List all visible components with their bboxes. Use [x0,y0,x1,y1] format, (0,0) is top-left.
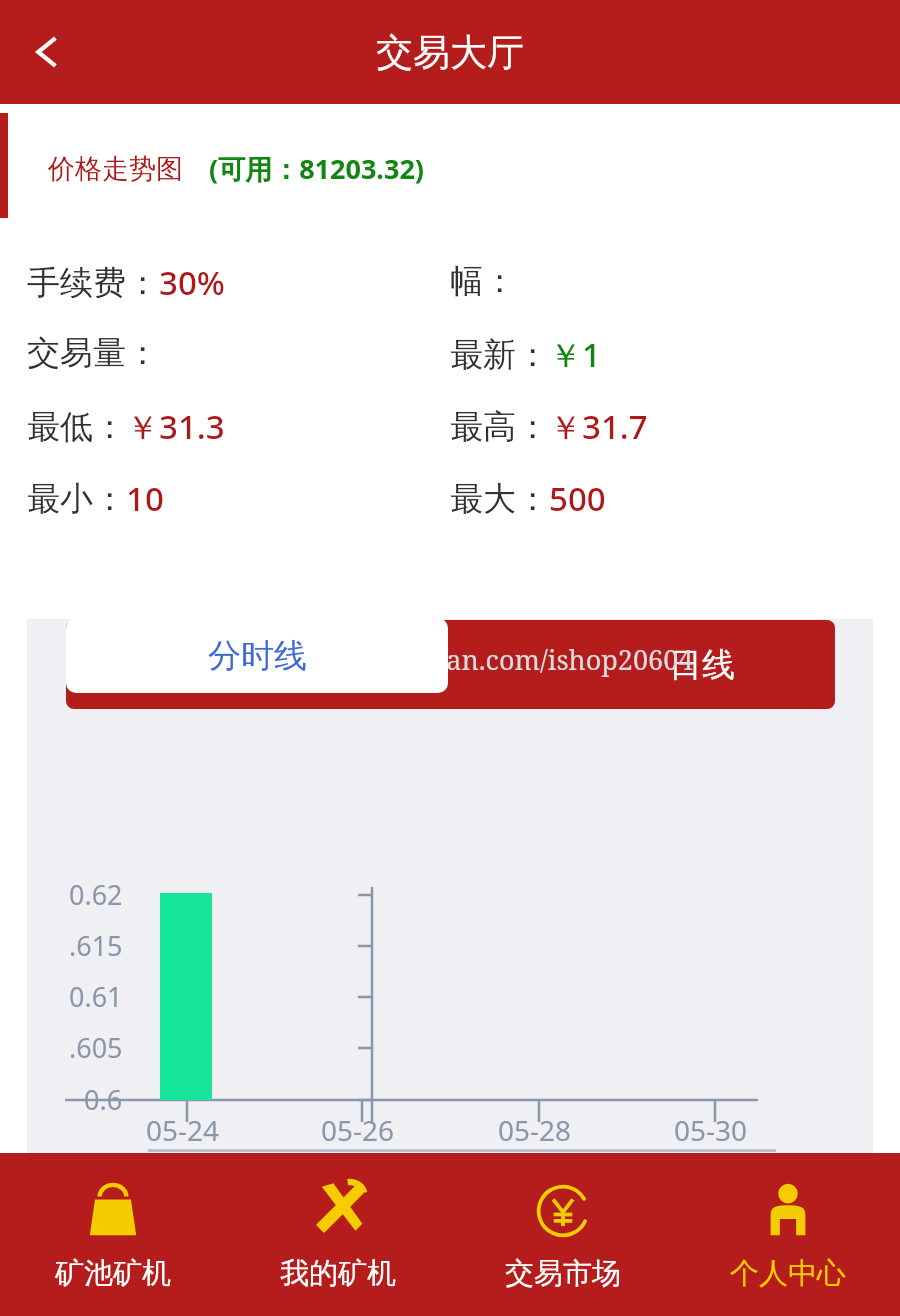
staticText: 05-28 [498,1111,572,1149]
staticText: ￥31.3 [126,404,225,449]
staticText: 最小： [27,478,126,520]
button[interactable]: 交易市场 [450,1153,675,1316]
staticText: https://www。huzhan.com/ishop20604 [196,641,694,678]
staticText: ￥31.7 [549,404,648,449]
staticText: 05-30 [674,1111,748,1149]
staticText: 个人中心 [730,1255,846,1292]
button[interactable]: 分时线 [66,618,448,693]
button[interactable]: 矿池矿机 [0,1153,225,1316]
staticText: 0.62 [69,876,123,913]
staticText: 我的矿机 [280,1255,396,1292]
staticText: 价格走势图 [48,152,183,186]
staticText: 最新： [450,334,549,376]
staticText: 0.61 [69,978,123,1015]
staticText: 交易市场 [505,1255,621,1292]
staticText: 最低： [27,406,126,448]
staticText: 幅： [450,260,516,302]
staticText: .615 [69,927,123,964]
button[interactable]: 我的矿机 [225,1153,450,1316]
staticText: 05-24 [146,1111,220,1149]
staticText: 最大： [450,478,549,520]
button[interactable]: 个人中心 [675,1153,900,1316]
staticText: 05-26 [321,1111,395,1149]
staticText: 10 [126,476,164,521]
staticText: 最高： [450,406,549,448]
staticText: 手续费： [27,262,159,304]
staticText: ￥1 [549,332,601,377]
staticText: 矿池矿机 [55,1255,171,1292]
staticText: 30% [159,260,225,305]
staticText: (可用：81203.32) [209,150,425,187]
staticText: 0.6 [84,1081,123,1118]
staticText: 500 [549,476,606,521]
staticText: 分时线 [208,635,307,677]
staticText: 交易量： [27,332,159,374]
button[interactable]: Back [16,22,76,82]
staticText: 日线 [669,644,735,686]
staticText: 交易大厅 [376,29,524,76]
button[interactable]: 日线 [669,644,735,686]
staticText: .605 [69,1029,123,1066]
